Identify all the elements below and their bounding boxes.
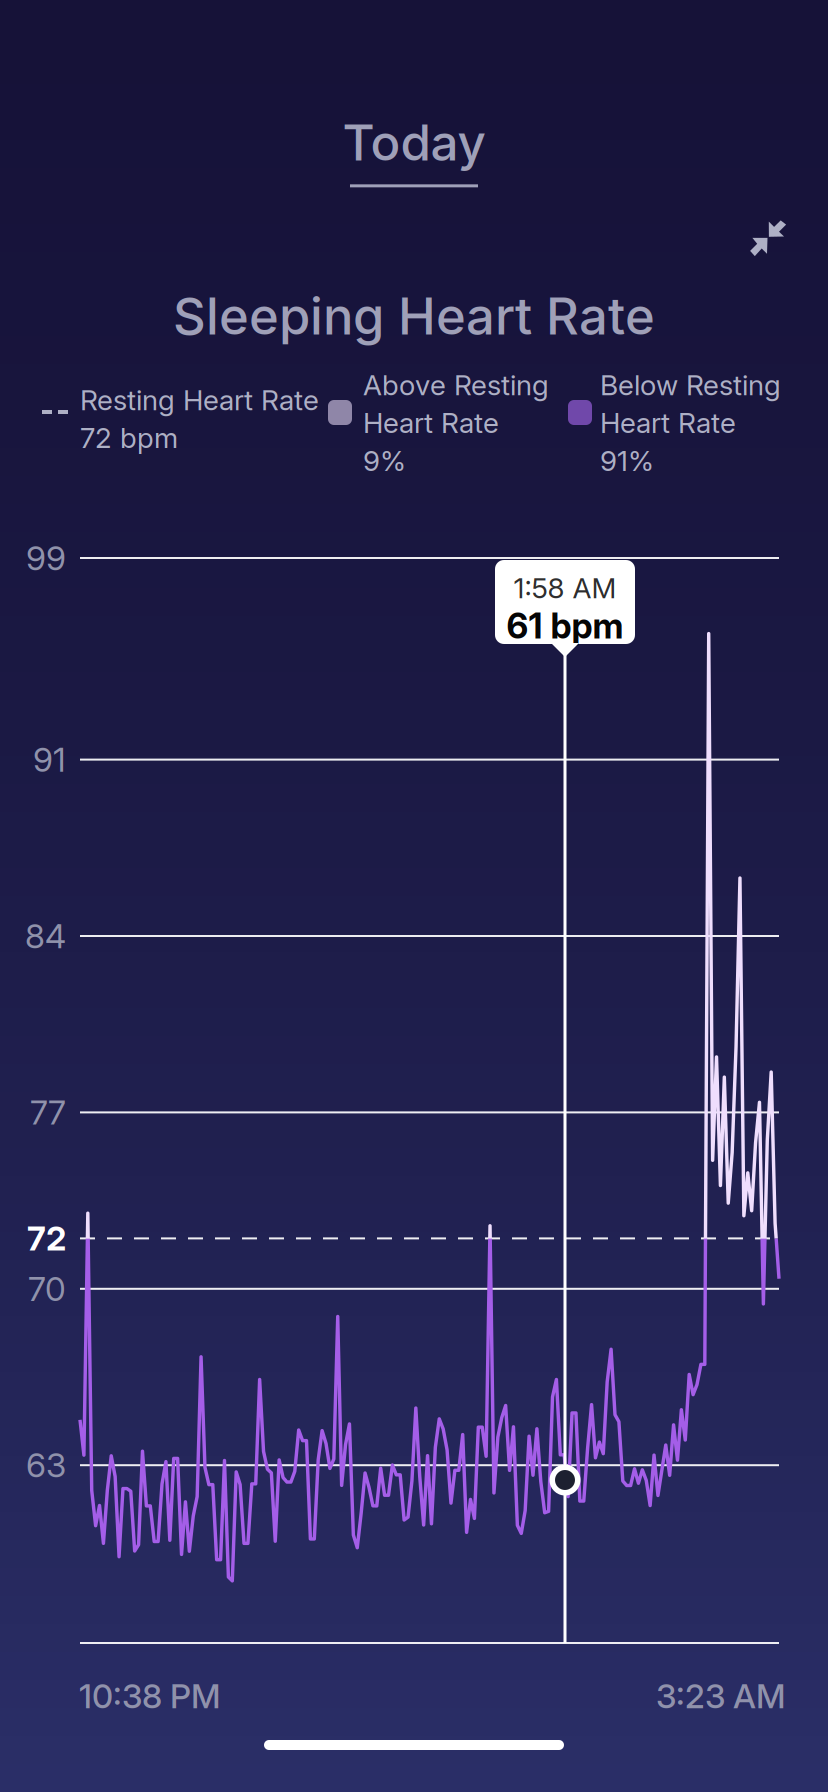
staticText: 3:23 AM — [656, 1676, 786, 1716]
staticText: 70 — [28, 1269, 66, 1309]
staticText: 72 bpm — [80, 421, 178, 455]
staticText: Above Resting — [363, 368, 549, 402]
staticText: Heart Rate — [600, 406, 736, 440]
staticText: Resting Heart Rate — [80, 383, 319, 417]
staticText: 63 — [26, 1445, 66, 1485]
staticText: 91 — [33, 739, 66, 780]
staticText: 84 — [25, 916, 66, 956]
staticText: 1:58 AM — [513, 571, 616, 605]
staticText: 72 — [27, 1218, 66, 1258]
staticText: Today — [342, 113, 485, 172]
button[interactable]: Collapse chart — [740, 215, 796, 263]
staticText: 99 — [26, 538, 66, 578]
staticText: 9% — [363, 444, 406, 478]
staticText: 77 — [30, 1092, 66, 1132]
staticText: Heart Rate — [363, 406, 499, 440]
button[interactable]: Today — [294, 108, 534, 192]
staticText: 10:38 PM — [79, 1676, 221, 1716]
staticText: Sleeping Heart Rate — [173, 285, 655, 347]
staticText: Below Resting — [600, 368, 781, 402]
staticText: 61 bpm — [506, 605, 623, 647]
staticText: 91% — [600, 444, 654, 478]
